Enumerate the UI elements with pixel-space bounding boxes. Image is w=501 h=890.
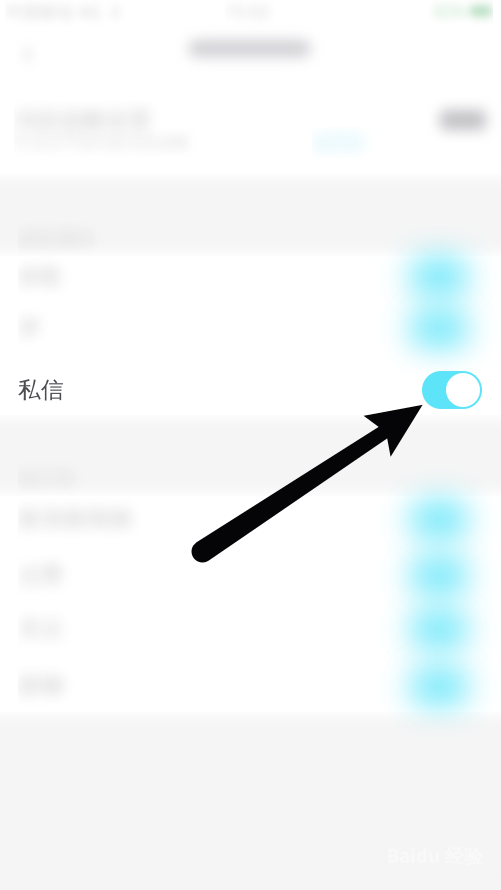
button[interactable]: 点赞 (0, 548, 501, 604)
staticText: 私信 (18, 376, 64, 404)
button[interactable]: 评 (0, 301, 501, 357)
button[interactable]: 关注 (0, 602, 501, 658)
button[interactable]: 私信 (0, 362, 501, 418)
button[interactable]: 群聊 (0, 659, 501, 715)
button[interactable]: @我 (0, 249, 501, 305)
button[interactable]: Open settings (422, 96, 501, 144)
button[interactable]: 新浪新闻推 (0, 492, 501, 548)
